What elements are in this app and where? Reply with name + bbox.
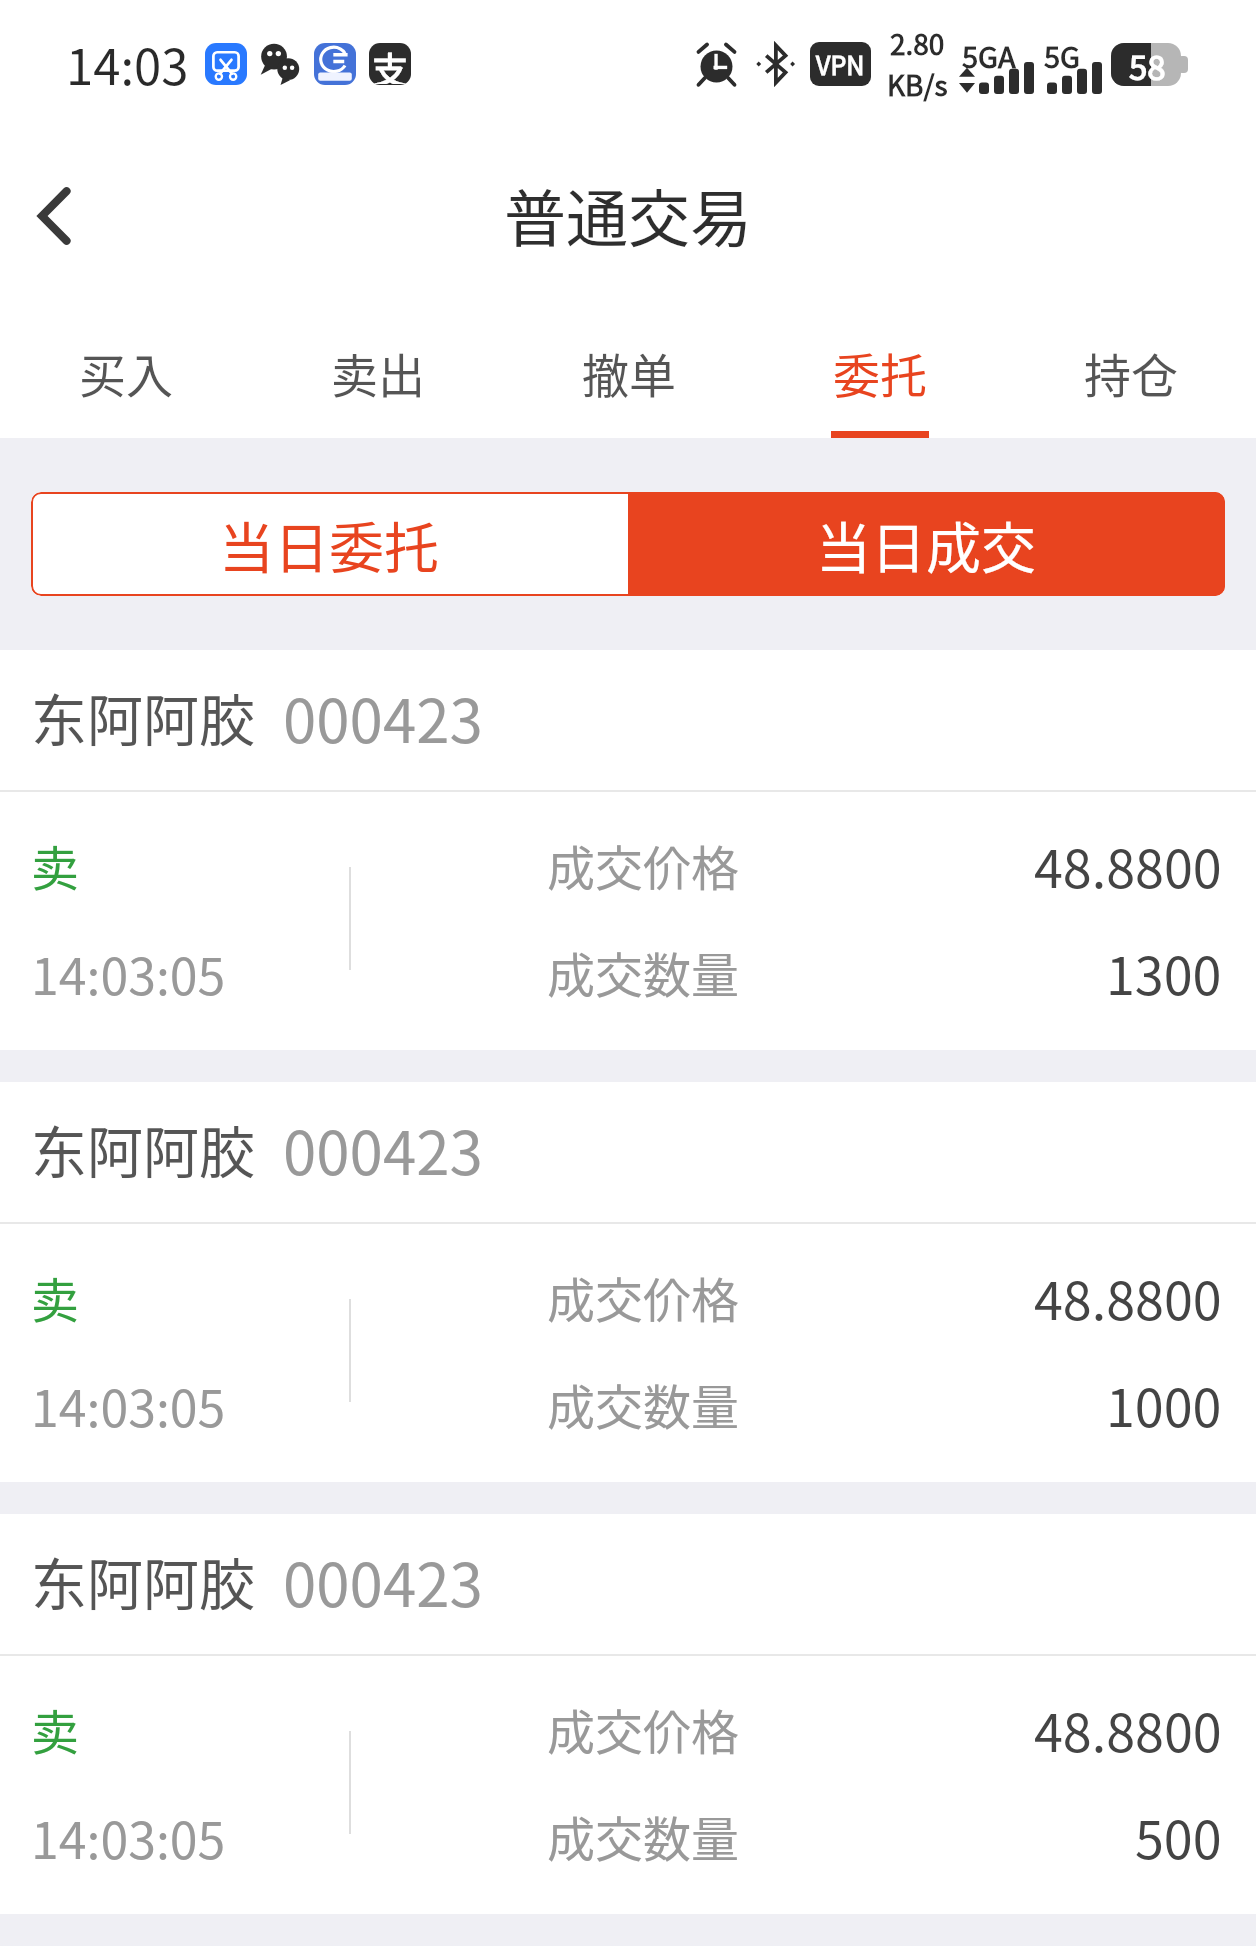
staticText: 48.8800 [1034, 1260, 1222, 1326]
staticText: 5GA [962, 34, 1016, 76]
button[interactable]: 委托 [754, 302, 1005, 438]
staticText: KB/s [887, 64, 948, 105]
staticText: 14:03:05 [31, 1801, 226, 1867]
staticText: 14:03:05 [31, 937, 226, 1003]
staticText: 成交价格 [547, 1262, 740, 1328]
staticText: 48.8800 [1034, 828, 1222, 894]
staticText: 14:03:05 [31, 1369, 226, 1435]
staticText: 委托 [833, 338, 927, 406]
staticText: 500 [1135, 1799, 1222, 1865]
staticText: 成交数量 [547, 1369, 740, 1435]
button[interactable]: 东阿阿胶 [0, 650, 1256, 1050]
staticText: 普通交易 [504, 170, 753, 260]
staticText: 成交价格 [547, 1694, 740, 1760]
staticText: 000423 [283, 1537, 483, 1624]
button[interactable]: 持仓 [1005, 302, 1256, 438]
staticText: 000423 [283, 1105, 483, 1192]
staticText: 卖 [31, 1262, 80, 1328]
button[interactable]: Back [0, 156, 108, 276]
staticText: 5G [1044, 34, 1081, 76]
button[interactable]: 当日成交 [628, 492, 1225, 596]
button[interactable]: 卖出 [252, 302, 503, 438]
staticText: 东阿阿胶 [31, 676, 255, 757]
staticText: 2.80 [890, 23, 945, 64]
staticText: VPN [816, 46, 865, 82]
staticText: 东阿阿胶 [31, 1540, 255, 1621]
staticText: 卖 [31, 1694, 80, 1760]
staticText: 当日委托 [219, 504, 440, 584]
staticText: 58 [1129, 42, 1166, 85]
button[interactable]: 买入 [0, 302, 252, 438]
staticText: 000423 [283, 673, 483, 760]
staticText: 成交数量 [547, 937, 740, 1003]
staticText: 撤单 [582, 338, 676, 406]
staticText: 成交数量 [547, 1801, 740, 1867]
button[interactable]: 撤单 [503, 302, 754, 438]
staticText: 支 [372, 43, 409, 84]
staticText: 买入 [79, 338, 173, 406]
staticText: 当日成交 [816, 504, 1037, 584]
staticText: 1000 [1106, 1367, 1222, 1433]
staticText: 持仓 [1084, 338, 1178, 406]
staticText: 1300 [1106, 935, 1222, 1001]
staticText: 卖 [31, 830, 80, 896]
staticText: 卖出 [331, 338, 425, 406]
button[interactable]: 当日委托 [31, 492, 628, 596]
button[interactable]: 东阿阿胶 [0, 1082, 1256, 1482]
staticText: 东阿阿胶 [31, 1108, 255, 1189]
staticText: 14:03 [66, 28, 189, 99]
staticText: 成交价格 [547, 830, 740, 896]
staticText: 48.8800 [1034, 1692, 1222, 1758]
button[interactable]: 东阿阿胶 [0, 1514, 1256, 1914]
